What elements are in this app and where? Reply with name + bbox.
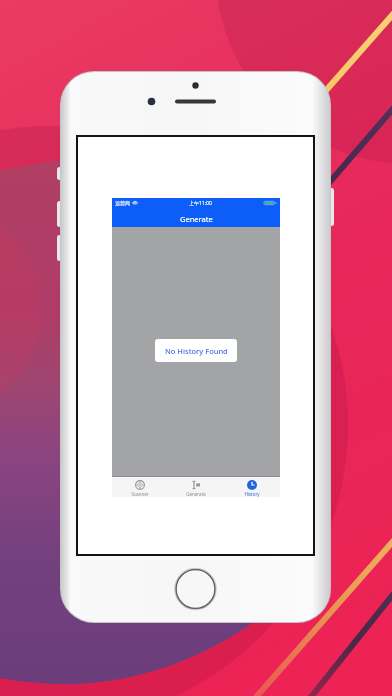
button[interactable]: History <box>224 478 280 497</box>
button[interactable]: Generate <box>168 478 224 497</box>
staticText: Generate <box>186 491 206 497</box>
button[interactable]: No History Found <box>155 339 237 362</box>
staticText: No History Found <box>165 346 228 356</box>
staticText: Scanner <box>131 491 149 497</box>
staticText: History <box>244 491 260 497</box>
button[interactable]: Scanner <box>112 478 168 497</box>
staticText: 上午11:00 <box>189 200 212 207</box>
staticText: 运营商 <box>115 200 130 206</box>
staticText: Generate <box>180 214 213 224</box>
